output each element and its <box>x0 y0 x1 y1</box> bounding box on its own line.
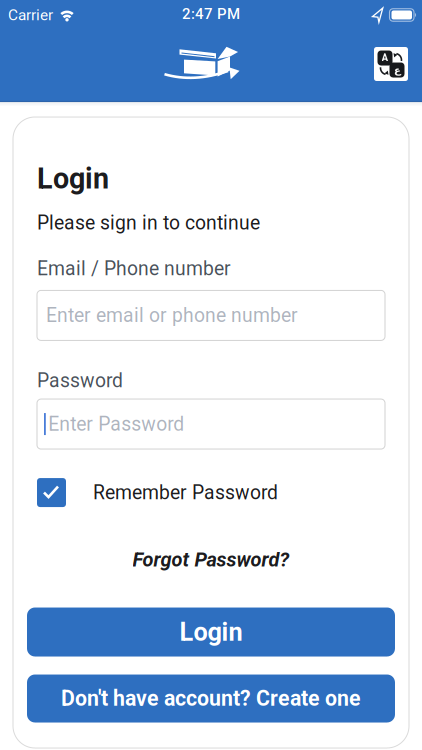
button[interactable]: Don't have account? Create one <box>27 674 395 722</box>
staticText: ع <box>393 64 400 76</box>
button[interactable]: Remember Password <box>37 478 278 507</box>
button[interactable]: Login <box>27 607 395 656</box>
button[interactable]: Enter Password <box>37 399 385 449</box>
staticText: Don't have account? Create one <box>61 686 361 711</box>
button[interactable]: Forgot Password? <box>132 548 289 571</box>
staticText: Enter Password <box>48 413 184 435</box>
staticText: 2:47 PM <box>182 5 240 23</box>
staticText: Remember Password <box>93 481 278 504</box>
staticText: Login <box>179 617 242 647</box>
staticText: Please sign in to continue <box>37 212 260 234</box>
staticText: Carrier <box>8 6 53 24</box>
staticText: A <box>381 52 388 64</box>
staticText: Enter email or phone number <box>46 304 298 327</box>
staticText: Email / Phone number <box>37 257 231 280</box>
staticText: Forgot Password? <box>132 548 289 571</box>
staticText: Login <box>37 162 109 196</box>
staticText: Password <box>37 369 123 392</box>
button[interactable]: Enter email or phone number <box>37 290 385 340</box>
button[interactable]: Translate <box>374 47 408 81</box>
